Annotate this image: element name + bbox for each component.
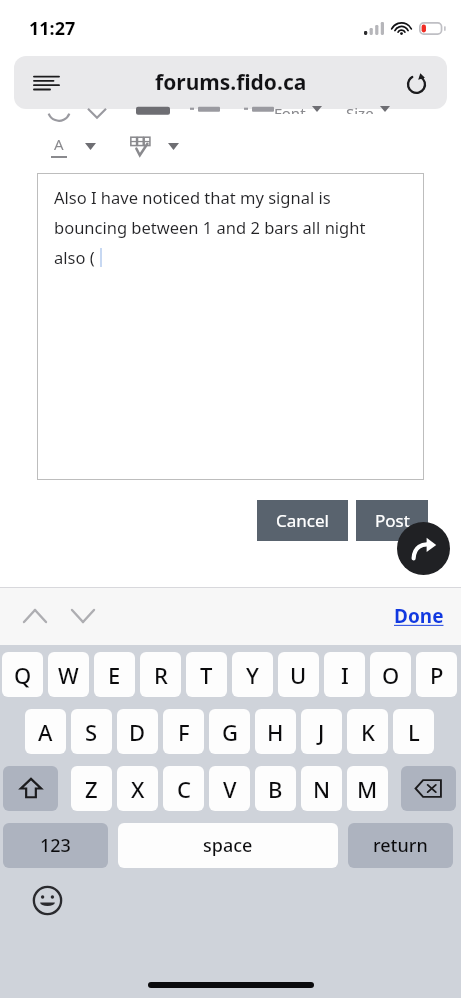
button[interactable]: N	[301, 766, 342, 811]
staticText: C	[177, 774, 191, 804]
staticText: X	[131, 774, 145, 804]
staticText: A	[38, 717, 53, 747]
staticText: Y	[246, 660, 259, 690]
staticText: B	[268, 774, 283, 804]
staticText: Done	[394, 603, 444, 629]
button[interactable]: Next field	[65, 598, 101, 634]
button[interactable]: Also I have noticed that my signal is	[37, 173, 424, 480]
staticText: H	[267, 717, 284, 747]
staticText: Post	[375, 509, 410, 532]
staticText: T	[200, 660, 213, 690]
staticText: N	[313, 774, 331, 804]
button[interactable]: Z	[71, 766, 112, 811]
staticText: M	[357, 774, 378, 804]
button[interactable]: B	[255, 766, 296, 811]
button[interactable]: M	[347, 766, 388, 811]
button[interactable]: O	[370, 652, 411, 697]
button[interactable]: F	[163, 709, 204, 754]
staticText: I	[341, 660, 349, 690]
button[interactable]: I	[324, 652, 365, 697]
staticText: Q	[14, 660, 32, 690]
staticText: space	[203, 833, 253, 858]
staticText: Z	[85, 774, 98, 804]
button[interactable]: Y	[232, 652, 273, 697]
staticText: Font	[274, 103, 306, 114]
staticText: O	[382, 660, 400, 690]
button[interactable]: Cancel	[257, 500, 348, 541]
button[interactable]: Page settings	[14, 56, 447, 109]
staticText: J	[318, 717, 325, 747]
staticText: Size	[346, 103, 374, 114]
button[interactable]: K	[347, 709, 388, 754]
button[interactable]: Page settings	[25, 62, 67, 104]
button[interactable]: W	[48, 652, 89, 697]
button[interactable]: 123	[3, 823, 108, 868]
button[interactable]: T	[186, 652, 227, 697]
staticText: Also I have noticed that my signal is	[54, 186, 331, 208]
staticText: V	[223, 774, 237, 804]
button[interactable]: Previous field	[17, 598, 53, 634]
button[interactable]: Share	[397, 522, 450, 575]
staticText: R	[154, 660, 168, 690]
staticText: G	[222, 717, 238, 747]
button[interactable]: A	[25, 709, 66, 754]
staticText: F	[178, 717, 190, 747]
button[interactable]: Backspace	[401, 766, 456, 811]
staticText: 11:27	[29, 16, 76, 41]
staticText: return	[373, 833, 428, 858]
button[interactable]: C	[163, 766, 204, 811]
staticText: A	[54, 134, 64, 154]
button[interactable]: L	[393, 709, 434, 754]
staticText: S	[85, 717, 98, 747]
button[interactable]: X	[117, 766, 158, 811]
button[interactable]: S	[71, 709, 112, 754]
staticText: forums.fido.ca	[155, 68, 307, 97]
button[interactable]: G	[209, 709, 250, 754]
staticText: L	[408, 717, 420, 747]
button[interactable]: Reload	[395, 62, 437, 104]
button[interactable]: Shift	[3, 766, 58, 811]
staticText: K	[361, 717, 375, 747]
staticText: P	[430, 660, 444, 690]
button[interactable]: V	[209, 766, 250, 811]
button[interactable]: R	[140, 652, 181, 697]
button[interactable]: H	[255, 709, 296, 754]
staticText: D	[129, 717, 146, 747]
button[interactable]: Open menu	[164, 135, 182, 157]
button[interactable]: U	[278, 652, 319, 697]
button[interactable]: D	[117, 709, 158, 754]
staticText: U	[290, 660, 307, 690]
button[interactable]: return	[348, 823, 453, 868]
button[interactable]: Spell check	[125, 132, 155, 160]
staticText: Cancel	[276, 509, 329, 532]
button[interactable]: Emoji keyboard	[29, 882, 65, 918]
staticText: 123	[40, 833, 71, 858]
button[interactable]: Open menu	[81, 135, 99, 157]
button[interactable]: Text colour	[46, 132, 72, 160]
button[interactable]: Done	[394, 603, 444, 629]
staticText: E	[108, 660, 121, 690]
staticText: also (	[54, 246, 95, 268]
staticText: bouncing between 1 and 2 bars all night	[54, 216, 366, 238]
button[interactable]: space	[118, 823, 338, 868]
button[interactable]: P	[416, 652, 457, 697]
button[interactable]: E	[94, 652, 135, 697]
staticText: W	[58, 660, 79, 690]
button[interactable]: Q	[2, 652, 43, 697]
button[interactable]: J	[301, 709, 342, 754]
button[interactable]: Post	[356, 500, 428, 541]
